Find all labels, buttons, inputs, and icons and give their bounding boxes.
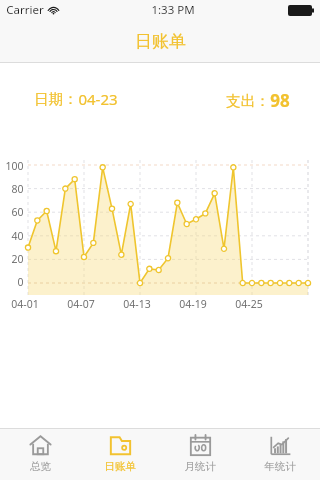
button[interactable]: 月统计 bbox=[160, 429, 240, 480]
other: 月统计 bbox=[189, 434, 212, 457]
other: 日账单 bbox=[109, 434, 132, 457]
staticText: 日账单 bbox=[135, 31, 186, 52]
staticText: 总览 bbox=[30, 460, 51, 473]
staticText: 80 bbox=[11, 182, 24, 196]
staticText: 98 bbox=[270, 89, 290, 112]
staticText: 年统计 bbox=[264, 460, 296, 473]
staticText: 04-19 bbox=[179, 297, 207, 311]
staticText: 04-01 bbox=[11, 297, 39, 311]
other: 年统计 bbox=[269, 434, 292, 457]
other: 总览 bbox=[29, 434, 52, 457]
staticText: 04-07 bbox=[67, 297, 95, 311]
staticText: 支出： bbox=[226, 92, 270, 110]
button[interactable]: 日账单 bbox=[80, 429, 160, 480]
staticText: 月统计 bbox=[184, 460, 216, 473]
staticText: 日账单 bbox=[104, 460, 136, 473]
staticText: 0 bbox=[17, 275, 24, 289]
button[interactable]: 总览 bbox=[0, 429, 80, 480]
staticText: Carrier bbox=[6, 2, 44, 18]
staticText: 日期： bbox=[34, 90, 78, 108]
staticText: 100 bbox=[5, 159, 24, 173]
staticText: 04-13 bbox=[123, 297, 151, 311]
staticText: 1:33 PM bbox=[151, 2, 195, 18]
staticText: 04-25 bbox=[235, 297, 263, 311]
staticText: 60 bbox=[11, 205, 24, 219]
staticText: 40 bbox=[11, 229, 24, 243]
staticText: 04-23 bbox=[78, 89, 118, 109]
button[interactable]: 年统计 bbox=[240, 429, 320, 480]
staticText: 20 bbox=[11, 252, 24, 266]
